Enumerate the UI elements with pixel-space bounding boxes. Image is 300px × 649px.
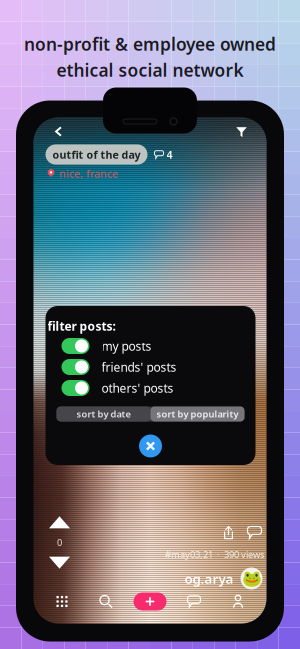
button[interactable]: Create post bbox=[128, 589, 172, 613]
button[interactable]: Close filters bbox=[139, 434, 162, 457]
staticText: nice, france bbox=[59, 166, 118, 181]
staticText: friends' posts bbox=[101, 359, 176, 375]
button[interactable]: Messages bbox=[172, 589, 216, 613]
staticText: sort by date bbox=[76, 408, 130, 420]
staticText: filter posts: bbox=[47, 318, 115, 334]
staticText: ethical social network bbox=[56, 58, 243, 81]
button[interactable]: Upvote bbox=[44, 514, 74, 530]
staticText: sort by popularity bbox=[156, 408, 238, 420]
button[interactable]: Profile bbox=[216, 589, 260, 613]
button[interactable]: Share bbox=[221, 525, 236, 540]
staticText: 🐸 bbox=[241, 569, 261, 588]
button[interactable]: Filter posts bbox=[229, 119, 253, 143]
button[interactable]: Search bbox=[84, 589, 128, 613]
button[interactable]: Browse bbox=[40, 589, 84, 613]
staticText: my posts bbox=[101, 338, 151, 354]
staticText: outfit of the day bbox=[52, 147, 140, 162]
staticText: non-profit & employee owned bbox=[24, 32, 276, 55]
button[interactable]: friends' posts bbox=[61, 358, 239, 376]
button[interactable]: Back bbox=[46, 119, 70, 143]
button[interactable]: my posts bbox=[61, 337, 239, 355]
staticText: og.arya bbox=[184, 570, 233, 587]
staticText: 4 bbox=[166, 147, 172, 162]
staticText: others' posts bbox=[101, 380, 173, 396]
staticText: 0 bbox=[57, 536, 62, 549]
button[interactable]: others' posts bbox=[61, 379, 239, 397]
staticText: #may03,21 · 390 views bbox=[165, 548, 264, 561]
button[interactable]: sort by date bbox=[56, 406, 244, 421]
button[interactable]: Downvote bbox=[44, 555, 74, 571]
button[interactable]: Comments bbox=[247, 525, 262, 540]
